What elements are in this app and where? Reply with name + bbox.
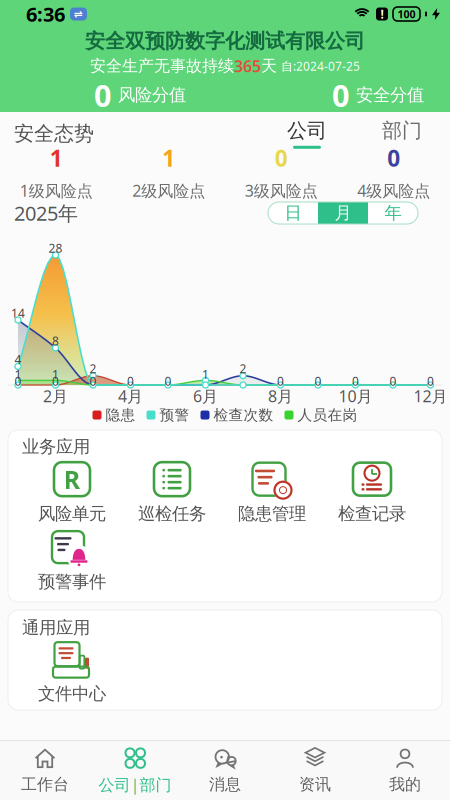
button[interactable]: 部门: [382, 118, 422, 149]
staticText: 8月: [268, 385, 293, 407]
button[interactable]: 公司: [287, 118, 327, 149]
button[interactable]: 公司|部门: [90, 741, 180, 800]
staticText: 1: [202, 366, 209, 382]
staticText: 公司|部门: [98, 774, 171, 795]
button[interactable]: 年: [368, 202, 418, 224]
staticText: 自:2024-07-25: [277, 58, 360, 74]
staticText: 0: [389, 373, 396, 389]
button[interactable]: R: [22, 463, 122, 521]
staticText: 6:36: [26, 1, 65, 27]
staticText: 部门: [382, 118, 422, 143]
staticText: 0: [94, 75, 112, 115]
staticText: 4月: [118, 385, 143, 407]
button[interactable]: 工作台: [0, 741, 90, 800]
staticText: 2025年: [14, 200, 78, 226]
button[interactable]: 我的: [360, 741, 450, 800]
staticText: 6月: [193, 385, 218, 407]
staticText: 10月: [338, 385, 372, 407]
staticText: 0: [277, 373, 284, 389]
staticText: 0: [387, 143, 400, 173]
button[interactable]: 预警事件: [22, 531, 122, 589]
button[interactable]: 月: [318, 202, 368, 224]
staticText: 预警事件: [38, 571, 106, 592]
staticText: 安全生产无事故持续: [90, 56, 234, 76]
staticText: 天: [261, 56, 277, 76]
staticText: 0: [127, 373, 134, 389]
staticText: 安全双预防数字化测试有限公司: [85, 29, 365, 53]
staticText: 1: [14, 366, 21, 382]
staticText: 1: [52, 366, 59, 382]
staticText: 风险单元: [38, 503, 106, 524]
staticText: 检查记录: [338, 503, 406, 524]
staticText: 0: [14, 373, 21, 389]
staticText: 消息: [209, 775, 241, 794]
staticText: 0: [275, 143, 288, 173]
staticText: 1: [50, 143, 63, 173]
staticText: 预警: [159, 406, 189, 424]
button[interactable]: 检查记录: [322, 463, 422, 521]
staticText: 工作台: [21, 775, 69, 794]
staticText: 14: [11, 305, 25, 321]
staticText: 28: [48, 240, 62, 256]
staticText: 1: [162, 143, 175, 173]
staticText: 检查次数: [213, 406, 273, 424]
staticText: 12月: [413, 385, 447, 407]
staticText: 8: [52, 333, 59, 349]
staticText: 我的: [389, 775, 421, 794]
staticText: 公司: [287, 118, 327, 143]
staticText: 0: [427, 373, 434, 389]
staticText: 资讯: [299, 775, 331, 794]
button[interactable]: 巡检任务: [122, 463, 222, 521]
staticText: 0: [352, 373, 359, 389]
staticText: 巡检任务: [138, 503, 206, 524]
staticText: 0: [164, 373, 171, 389]
staticText: 风险分值: [118, 84, 186, 106]
button[interactable]: 日: [268, 202, 318, 224]
staticText: 年: [384, 202, 401, 224]
staticText: 4: [14, 351, 21, 367]
staticText: 1级风险点: [20, 180, 93, 201]
staticText: 隐患: [105, 406, 135, 424]
staticText: 业务应用: [22, 436, 90, 457]
staticText: 2: [89, 361, 96, 377]
staticText: 0: [314, 373, 321, 389]
staticText: 隐患管理: [238, 503, 306, 524]
staticText: 2级风险点: [132, 180, 205, 201]
staticText: !: [380, 6, 383, 22]
staticText: 2: [239, 361, 246, 377]
staticText: 月: [334, 202, 351, 224]
button[interactable]: 文件中心: [22, 643, 122, 701]
staticText: R: [63, 462, 80, 496]
button[interactable]: 资讯: [270, 741, 360, 800]
staticText: 0: [89, 373, 96, 389]
staticText: 365: [234, 55, 261, 77]
staticText: 100: [397, 7, 415, 21]
staticText: 日: [284, 202, 301, 224]
staticText: 安全分值: [356, 84, 424, 106]
staticText: 通用应用: [22, 617, 90, 638]
button[interactable]: 隐患管理: [222, 463, 322, 521]
staticText: 安全态势: [14, 121, 94, 146]
staticText: 4级风险点: [357, 180, 430, 201]
staticText: 0: [52, 373, 59, 389]
staticText: 人员在岗: [297, 406, 357, 424]
staticText: 2月: [43, 385, 68, 407]
staticText: 0: [332, 75, 350, 115]
staticText: ⇌: [74, 8, 83, 20]
staticText: 文件中心: [38, 683, 106, 704]
button[interactable]: 消息: [180, 741, 270, 800]
staticText: 3级风险点: [245, 180, 318, 201]
